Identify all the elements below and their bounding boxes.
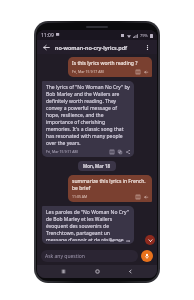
button[interactable]: Share [125,149,130,154]
button[interactable]: Reply [143,69,148,74]
staticText: summarize this lyrics in French. be brie… [72,178,148,192]
button[interactable]: Mon, Mar 18 [78,161,116,171]
button[interactable]: Is this lyrics worth reading ? [68,57,152,77]
button[interactable]: Translate [135,69,140,74]
staticText: Mon, Mar 18 [83,163,111,169]
staticText: Ask any question [45,253,85,260]
button[interactable]: Home [91,265,104,278]
button[interactable]: Save [109,149,114,154]
staticText: no-woman-no-cry-lyrics.pdf [55,44,128,51]
staticText: Fri, Mar 15 9:17 AM [72,69,104,74]
button[interactable]: Voice input [141,250,153,262]
button[interactable]: Scroll to bottom [145,235,155,245]
staticText: 79% [140,33,148,38]
button[interactable]: The lyrics of "No Woman No Cry" by Bob M… [42,81,134,157]
button[interactable]: Ask any question [41,250,138,262]
staticText: Fri, Mar 15 9:11 AM [46,149,78,154]
button[interactable]: Back [124,265,137,278]
button[interactable]: Copy [117,149,122,154]
staticText: The lyrics of "No Woman No Cry" by Bob M… [46,84,130,147]
button[interactable]: Reply [143,194,148,199]
button[interactable]: Back [41,42,52,53]
button[interactable]: Translate [135,194,140,199]
staticText: 11:09 [41,32,54,39]
button[interactable]: summarize this lyrics in French. be brie… [68,175,152,202]
staticText: 11:05 AM [72,194,88,199]
button[interactable]: Recent apps [57,265,70,278]
button[interactable]: Les paroles de "No Woman No Cry" de Bob … [42,206,134,244]
button[interactable]: More options [142,42,153,53]
staticText: Is this lyrics worth reading ? [72,60,138,67]
staticText: Les paroles de "No Woman No Cry" de Bob … [46,209,130,241]
